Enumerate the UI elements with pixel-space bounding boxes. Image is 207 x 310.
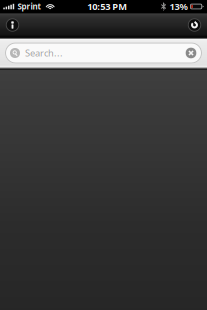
- button[interactable]: Info: [0, 13, 24, 37]
- staticText: Search...: [25, 47, 63, 59]
- staticText: 13%: [170, 0, 188, 13]
- staticText: Sprint: [17, 1, 40, 12]
- button[interactable]: Clear search: [185, 47, 197, 59]
- button[interactable]: Refresh: [182, 13, 206, 37]
- staticText: 10:53 PM: [87, 0, 127, 13]
